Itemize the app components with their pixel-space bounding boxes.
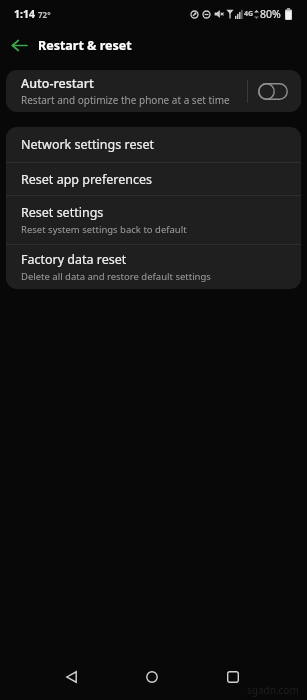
- staticText: Auto-restart: [21, 75, 94, 92]
- staticText: Reset settings: [21, 204, 104, 221]
- button[interactable]: [12, 32, 38, 58]
- staticText: Network settings reset: [21, 136, 154, 153]
- staticText: 80%: [260, 7, 281, 21]
- button[interactable]: Network settings reset: [6, 127, 301, 162]
- staticText: Reset system settings back to default: [21, 223, 187, 236]
- staticText: Restart & reset: [38, 37, 132, 54]
- button[interactable]: Auto-restart: [6, 70, 301, 112]
- staticText: Delete all data and restore default sett…: [21, 270, 211, 283]
- button[interactable]: [54, 660, 88, 694]
- button[interactable]: [216, 660, 250, 694]
- staticText: 4G: [244, 9, 254, 19]
- button[interactable]: [135, 660, 169, 694]
- staticText: Restart and optimize the phone at a set …: [21, 93, 230, 107]
- button[interactable]: Factory data reset: [6, 245, 301, 289]
- button[interactable]: Reset app preferences: [6, 163, 301, 195]
- staticText: 72°: [38, 9, 51, 20]
- staticText: Factory data reset: [21, 251, 127, 268]
- button[interactable]: Reset settings: [6, 196, 301, 244]
- staticText: Reset app preferences: [21, 171, 152, 188]
- staticText: sgadn.com: [247, 683, 299, 697]
- staticText: 1:14: [14, 7, 35, 21]
